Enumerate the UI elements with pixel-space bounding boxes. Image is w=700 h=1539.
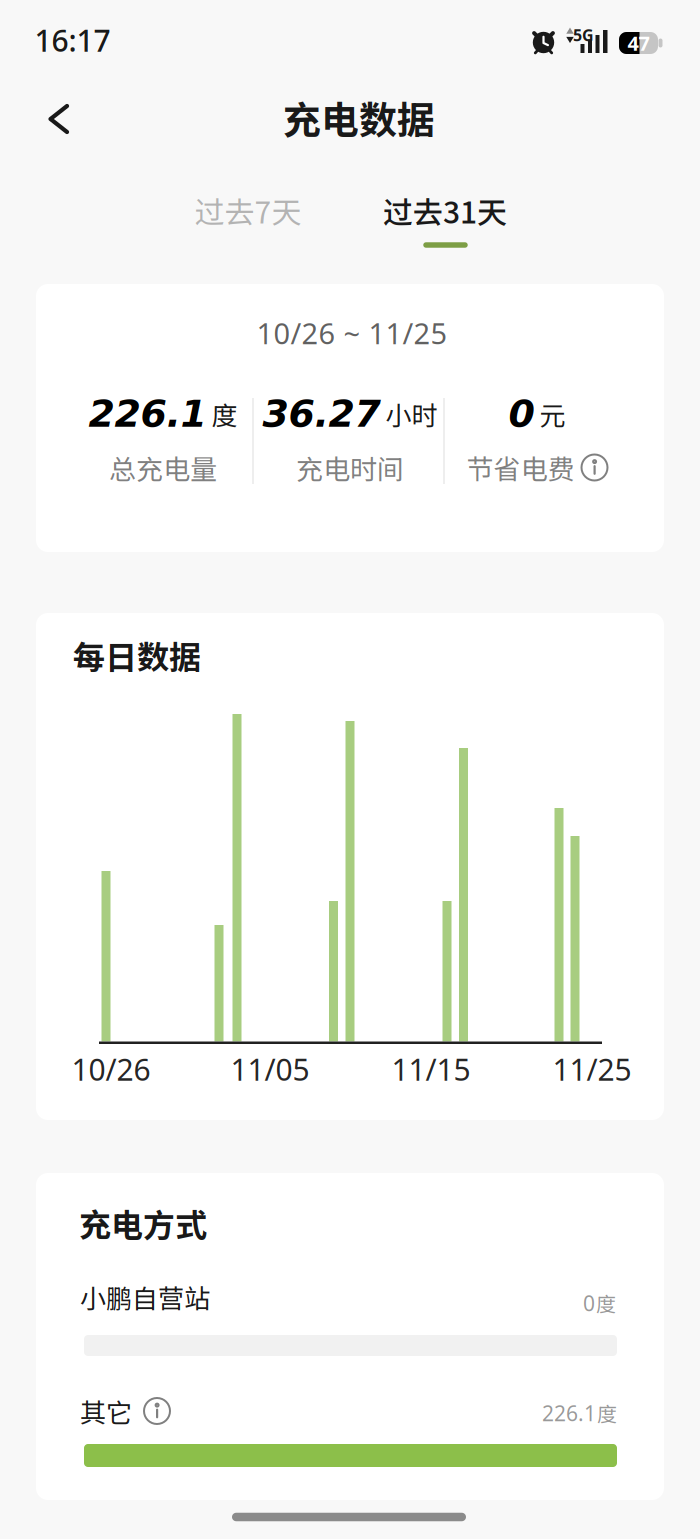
staticText: 11/25 <box>552 1049 631 1089</box>
staticText: 每日数据 <box>73 632 201 678</box>
staticText: 226.1 <box>88 391 206 436</box>
staticText: 10/26 <box>71 1049 150 1089</box>
staticText: 充电数据 <box>283 90 435 145</box>
staticText: 小时 <box>385 395 437 433</box>
staticText: 10/26 ~ 11/25 <box>256 313 447 353</box>
staticText: 226.1 <box>542 1399 596 1427</box>
staticText: 11/15 <box>391 1049 470 1089</box>
staticText: 度 <box>596 1288 616 1317</box>
staticText: 度 <box>597 1398 617 1427</box>
staticText: 16:17 <box>34 20 110 60</box>
staticText: 充电时间 <box>296 448 404 487</box>
staticText: 元 <box>539 395 565 433</box>
staticText: 47 <box>627 29 649 57</box>
staticText: 过去7天 <box>194 189 301 232</box>
staticText: 36.27 <box>262 391 380 436</box>
staticText: 度 <box>211 395 237 433</box>
staticText: 11/05 <box>230 1049 309 1089</box>
staticText: 5G <box>573 24 594 46</box>
staticText: 总充电量 <box>109 448 217 487</box>
staticText: 充电方式 <box>79 1200 207 1246</box>
staticText: 其它 <box>80 1392 132 1430</box>
staticText: 0 <box>583 1289 595 1317</box>
staticText: 节省电费 <box>466 448 574 487</box>
staticText: 过去31天 <box>383 189 507 232</box>
staticText: 0 <box>508 391 534 436</box>
staticText: 小鹏自营站 <box>80 1278 210 1316</box>
